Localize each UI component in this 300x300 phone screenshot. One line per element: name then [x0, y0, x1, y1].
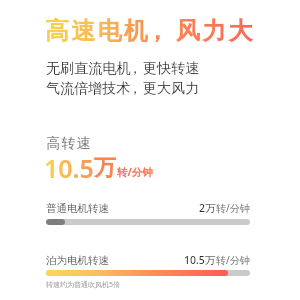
- button[interactable]: 泊为电机转速: [46, 253, 250, 269]
- button[interactable]: 泊为电机转速 10.5万 转/分钟: [46, 270, 250, 276]
- staticText: 10.5万: [184, 253, 216, 267]
- staticText: 无刷直流电机: [46, 59, 131, 77]
- staticText: ，: [128, 59, 143, 77]
- staticText: 更大风力: [143, 79, 200, 97]
- staticText: 高速电机: [45, 16, 150, 46]
- staticText: ，: [145, 16, 172, 46]
- staticText: 万: [94, 154, 116, 182]
- button[interactable]: 普通电机转速: [46, 201, 250, 217]
- staticText: 转/分钟: [216, 201, 250, 215]
- button[interactable]: 高转速: [46, 131, 164, 181]
- staticText: 泊为电机转速: [46, 254, 109, 267]
- staticText: 气流倍增技术: [46, 79, 131, 97]
- staticText: 更快转速: [143, 59, 200, 77]
- staticText: 2万: [199, 201, 216, 215]
- button[interactable]: 普通电机转速 2万 转/分钟: [46, 219, 250, 225]
- staticText: ，: [128, 79, 143, 97]
- staticText: 风力大: [176, 16, 255, 46]
- staticText: 转/分钟: [216, 253, 250, 267]
- staticText: 转速约为普通吹风机5倍: [46, 280, 121, 290]
- staticText: 10.5: [44, 151, 94, 185]
- staticText: 转/分钟: [117, 165, 153, 179]
- staticText: 普通电机转速: [46, 202, 109, 215]
- staticText: 高转速: [46, 135, 91, 153]
